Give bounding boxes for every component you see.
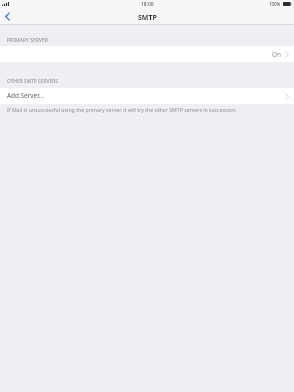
staticText: 18:00 <box>141 1 154 8</box>
staticText: SMTP <box>138 13 157 23</box>
button[interactable]: Back <box>0 9 15 23</box>
button[interactable]: Add Server <box>0 88 294 104</box>
staticText: PRIMARY SERVER <box>7 37 49 44</box>
staticText: If Mail is unsuccessful using the primar… <box>7 106 237 113</box>
button[interactable]: Primary server, On <box>0 46 294 62</box>
staticText: Add Server... <box>7 91 44 100</box>
staticText: On <box>272 50 281 59</box>
staticText: 100% <box>269 1 281 7</box>
staticText: OTHER SMTP SERVERS <box>7 78 58 85</box>
